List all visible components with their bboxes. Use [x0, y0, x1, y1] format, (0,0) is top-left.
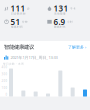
staticText: 睡眠时长 [54, 25, 66, 29]
staticText: 100 [1, 86, 7, 90]
button[interactable]: 智能健康建议 [0, 41, 90, 53]
staticText: 每日步数 · 本周 [3, 62, 24, 65]
staticText: 51 [10, 16, 20, 27]
staticText: 步 [27, 7, 30, 10]
staticText: 0 [5, 93, 7, 96]
staticText: 6.9 [53, 16, 65, 27]
staticText: 分钟 [22, 20, 28, 23]
staticText: 111 [10, 3, 25, 14]
staticText: 2021年1月17日, 周日, 13:33 [10, 55, 57, 60]
staticText: 锻炼时间 [11, 25, 23, 29]
staticText: 400 [1, 65, 7, 69]
staticText: 300 [1, 72, 7, 76]
staticText: 小时 [67, 20, 73, 23]
staticText: 活动能量 [54, 12, 66, 15]
staticText: 智能健康建议 [4, 44, 34, 50]
staticText: 了解更多 › [68, 44, 86, 50]
staticText: 200 [1, 79, 7, 83]
staticText: 千卡 [70, 7, 76, 10]
staticText: 日步数目标 [11, 12, 26, 15]
staticText: 131 [53, 3, 68, 14]
